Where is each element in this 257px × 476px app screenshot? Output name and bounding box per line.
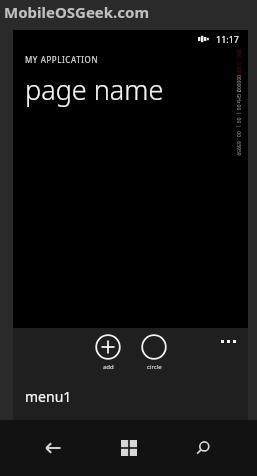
staticText: 11:17 — [216, 33, 240, 45]
staticText: menu1 — [25, 387, 72, 406]
staticText: page name — [25, 71, 164, 108]
button[interactable]: Search — [182, 426, 226, 470]
staticText: 7 GHz — [234, 89, 241, 103]
button[interactable]: menu1 — [13, 376, 248, 420]
staticText: 65959 — [235, 141, 242, 156]
staticText: 00 . — [235, 131, 242, 140]
staticText: MobileOSGeek.com — [4, 2, 150, 22]
button[interactable]: More options — [218, 337, 239, 346]
staticText: circle — [147, 363, 162, 371]
button[interactable]: Back — [31, 426, 75, 470]
staticText: 00 | — [234, 117, 241, 127]
button[interactable]: Start — [107, 426, 151, 470]
staticText: 000000 — [234, 74, 241, 92]
staticText: 0.000 — [235, 62, 242, 75]
staticText: 00 | — [234, 104, 241, 114]
staticText: 000 — [235, 49, 242, 58]
staticText: MY APPLICATION — [25, 54, 99, 65]
staticText: add — [103, 363, 114, 371]
button[interactable]: circle — [137, 332, 171, 373]
button[interactable]: add — [91, 332, 125, 373]
